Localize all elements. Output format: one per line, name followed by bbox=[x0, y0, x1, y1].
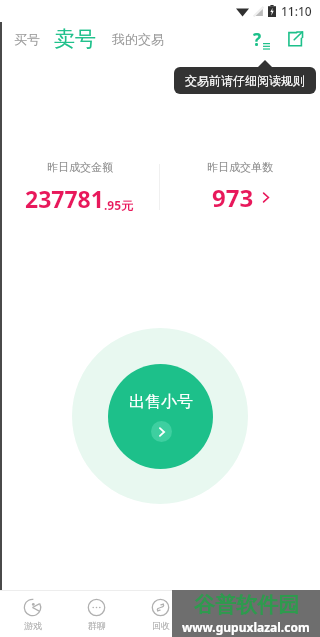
button[interactable]: 交易前请仔细阅读规则 bbox=[174, 67, 316, 94]
button[interactable]: Help bbox=[248, 26, 274, 52]
staticText: 交易 bbox=[216, 620, 234, 631]
staticText: 11:10 bbox=[281, 3, 312, 19]
staticText: 回收 bbox=[152, 620, 170, 631]
staticText: 出售小号 bbox=[129, 392, 193, 412]
button[interactable]: 群聊 bbox=[64, 591, 128, 637]
button[interactable]: 我的交易 bbox=[109, 27, 167, 51]
staticText: 卖号 bbox=[54, 26, 96, 52]
staticText: 谷普软件园 bbox=[194, 592, 299, 618]
button[interactable]: Share bbox=[282, 26, 308, 52]
button[interactable]: 买号 bbox=[11, 27, 43, 51]
staticText: 游戏 bbox=[24, 620, 42, 631]
button[interactable]: 交易 bbox=[192, 591, 256, 637]
staticText: 我的交易 bbox=[112, 31, 164, 47]
staticText: 买号 bbox=[14, 31, 40, 47]
staticText: .95元 bbox=[104, 197, 134, 213]
staticText: ? bbox=[253, 28, 262, 51]
button[interactable]: 昨日成交金额 bbox=[0, 156, 159, 218]
staticText: 我的 bbox=[280, 620, 298, 631]
staticText: 昨日成交单数 bbox=[207, 160, 273, 174]
button[interactable]: 卖号 bbox=[51, 25, 99, 53]
staticText: 973 bbox=[212, 181, 254, 214]
button[interactable]: 回收 bbox=[128, 591, 192, 637]
button[interactable]: 我的 bbox=[256, 591, 320, 637]
button[interactable]: 游戏 bbox=[0, 591, 64, 637]
staticText: 昨日成交金额 bbox=[47, 160, 113, 174]
button[interactable]: 出售小号 bbox=[108, 364, 213, 469]
staticText: 群聊 bbox=[88, 620, 106, 631]
staticText: 交易前请仔细阅读规则 bbox=[185, 73, 305, 88]
staticText: 237781 bbox=[25, 183, 104, 214]
staticText: www.gupuxlazal.com bbox=[182, 619, 310, 635]
button[interactable]: 昨日成交单数 bbox=[160, 156, 320, 218]
